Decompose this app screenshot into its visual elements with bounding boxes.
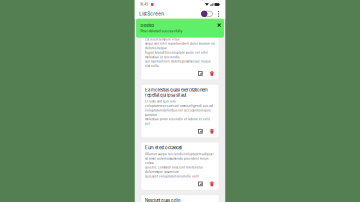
staticText: Est rerum tempore vitae sequi sint nihil… xyxy=(145,38,215,68)
button[interactable]: Edit post xyxy=(197,181,203,187)
button[interactable]: Delete post xyxy=(209,128,215,134)
button[interactable]: Edit post xyxy=(197,70,203,77)
button[interactable]: Dismiss notification xyxy=(217,23,221,27)
staticText: 10:45 xyxy=(140,3,148,6)
staticText: Qui est esse xyxy=(145,30,166,35)
staticText: Post deleted successfully xyxy=(140,29,182,33)
button[interactable]: Delete post xyxy=(209,181,215,187)
staticText: Ullam et saepe reiciendis voluptatem adi… xyxy=(145,152,214,178)
button[interactable]: More options xyxy=(218,11,219,17)
staticText: List Screen xyxy=(139,11,164,17)
staticText: Deleted xyxy=(140,23,153,28)
staticText: Et iusto sed quo iure voluptatem occaeca… xyxy=(145,100,213,125)
staticText: Ea molestias quasi exercitationem repell… xyxy=(145,87,208,98)
button[interactable]: Toggle layout xyxy=(201,11,212,17)
button[interactable]: Edit post xyxy=(197,128,203,134)
button[interactable]: Delete post xyxy=(209,70,215,77)
staticText: Nesciunt quas odio xyxy=(145,198,181,202)
staticText: Eum et est occaecati xyxy=(145,145,182,150)
